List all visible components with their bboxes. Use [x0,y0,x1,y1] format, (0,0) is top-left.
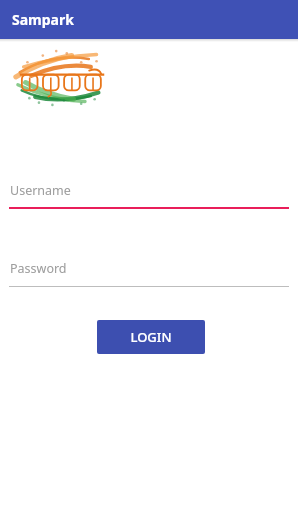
button[interactable]: Password [0,259,298,287]
other: Sampark logo [14,50,110,106]
button[interactable]: LOGIN [97,320,205,354]
staticText: Username [10,182,71,199]
staticText: LOGIN [130,328,172,346]
button[interactable]: Username [0,181,298,209]
staticText: Sampark [12,10,74,29]
staticText: Password [10,260,67,277]
